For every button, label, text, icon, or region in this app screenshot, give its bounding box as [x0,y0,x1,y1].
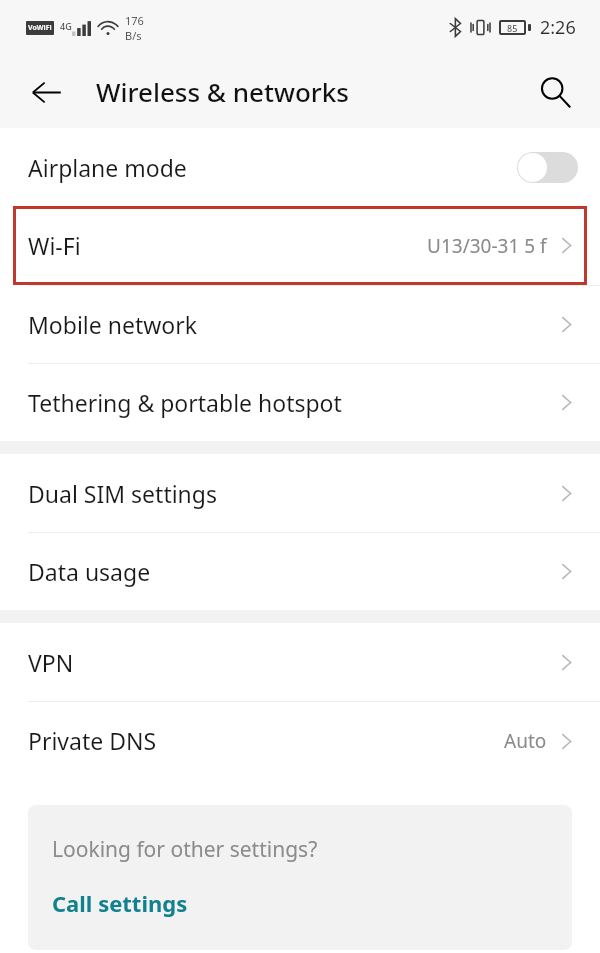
staticText: Airplane mode [28,152,517,183]
button[interactable]: Airplane mode [0,128,600,206]
button[interactable]: Search [532,69,578,115]
button[interactable]: Wi-Fi [0,206,600,285]
staticText: Looking for other settings? [52,835,318,864]
button[interactable]: Looking for other settings? [28,805,572,950]
button[interactable]: VPN [0,623,600,701]
button[interactable]: Back [23,69,69,115]
staticText: 176 [125,13,144,28]
staticText: U13/30-31 5 f [427,233,547,259]
button[interactable]: Dual SIM settings [0,454,600,532]
button[interactable]: Mobile network [0,286,600,363]
button[interactable]: Data usage [0,533,600,610]
staticText: Data usage [28,556,555,587]
staticText: 85 [507,22,518,34]
button[interactable]: Private DNS [0,702,600,779]
staticText: Dual SIM settings [28,478,555,509]
staticText: Private DNS [28,725,504,756]
staticText: Auto [504,728,547,754]
staticText: Call settings [52,888,188,918]
button[interactable]: Tethering & portable hotspot [0,364,600,441]
button[interactable] [517,152,578,183]
staticText: Tethering & portable hotspot [28,387,555,418]
staticText: Mobile network [28,309,555,340]
staticText: 4G [60,20,72,32]
staticText: Wireless & networks [96,74,350,109]
staticText: 2:26 [540,15,576,40]
staticText: Wi-Fi [28,230,427,261]
staticText: VoWiFi [28,23,52,33]
staticText: B/s [125,28,142,43]
staticText: VPN [28,647,555,678]
